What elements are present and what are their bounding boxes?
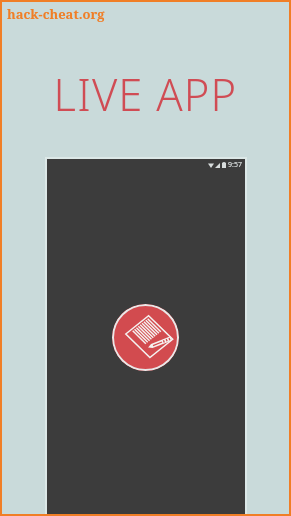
staticText: 9:57 bbox=[228, 160, 242, 170]
button[interactable]: Live App logo bbox=[112, 304, 179, 371]
staticText: LIVE APP bbox=[0, 64, 291, 123]
staticText: hack-cheat.org bbox=[7, 5, 105, 23]
